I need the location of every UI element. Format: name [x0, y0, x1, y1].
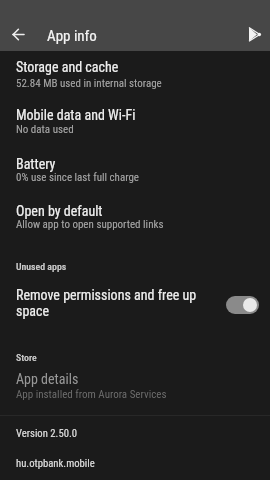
staticText: Allow app to open supported links	[16, 218, 164, 231]
staticText: 0% use since last full charge	[16, 171, 140, 184]
staticText: Battery	[16, 156, 56, 172]
button[interactable]	[6, 22, 31, 47]
staticText: App info	[47, 27, 97, 45]
button[interactable]: Remove permissions and free up space	[0, 277, 270, 325]
button[interactable]: Mobile data and Wi-Fi	[0, 103, 270, 151]
button[interactable]: hu.otpbank.mobile	[0, 449, 270, 480]
staticText: 52.84 MB used in internal storage	[16, 77, 162, 90]
button[interactable]: Open by default	[0, 198, 270, 246]
button[interactable]: Storage and cache	[0, 55, 270, 103]
button[interactable]: App details	[0, 365, 270, 415]
staticText: Open by default	[16, 203, 103, 219]
staticText: Unused apps	[16, 261, 67, 272]
button[interactable]: Version 2.50.0	[0, 416, 270, 448]
staticText: Mobile data and Wi-Fi	[16, 107, 136, 123]
staticText: Store	[16, 352, 37, 363]
staticText: Storage and cache	[16, 59, 119, 75]
staticText: No data used	[16, 123, 74, 136]
button[interactable]: Battery	[0, 151, 270, 199]
staticText: Version 2.50.0	[16, 427, 78, 440]
button[interactable]	[226, 296, 259, 314]
staticText: Remove permissions and free up space	[16, 287, 197, 319]
button[interactable]	[242, 22, 267, 47]
staticText: App details	[16, 371, 79, 387]
staticText: hu.otpbank.mobile	[16, 457, 95, 470]
staticText: App installed from Aurora Services	[16, 388, 167, 401]
